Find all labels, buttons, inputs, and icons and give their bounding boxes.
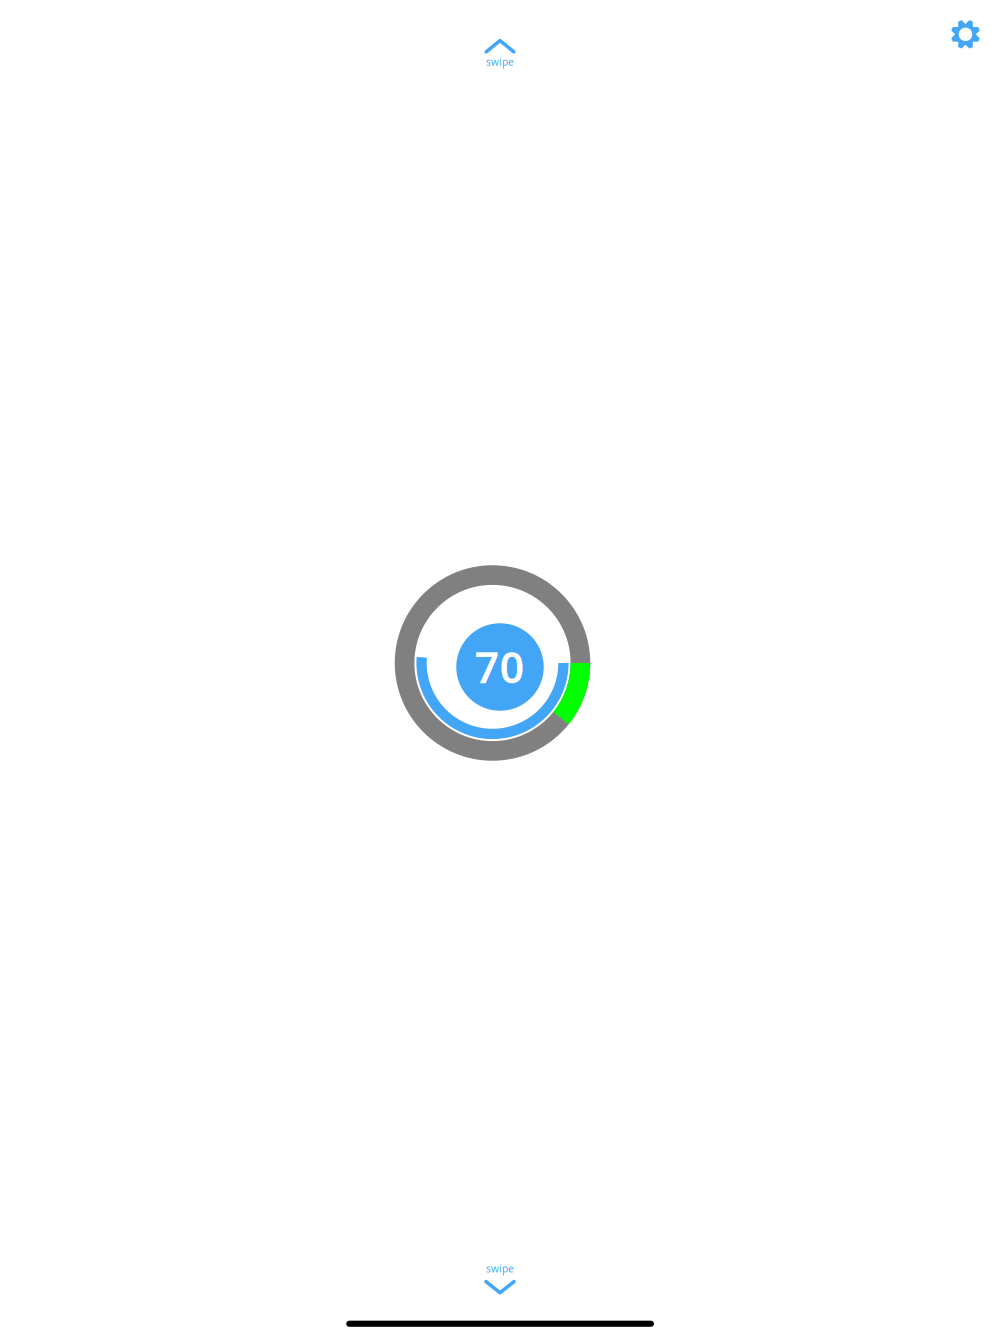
button[interactable]: swipe xyxy=(440,10,560,80)
staticText: swipe xyxy=(486,55,514,69)
button[interactable]: Settings xyxy=(939,8,991,60)
button[interactable]: swipe xyxy=(440,1250,560,1320)
staticText: 70 xyxy=(475,637,525,696)
staticText: swipe xyxy=(486,1262,514,1275)
